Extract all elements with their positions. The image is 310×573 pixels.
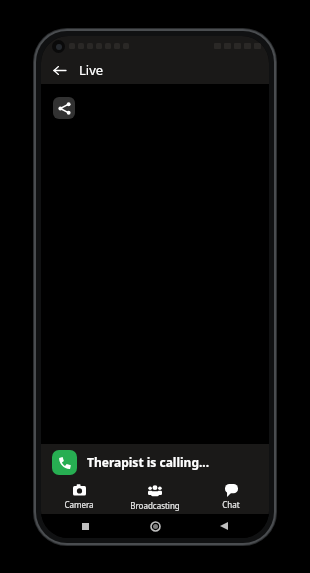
- staticText: Broadcasting: [130, 500, 180, 511]
- button[interactable]: Recents: [41, 514, 117, 538]
- button[interactable]: Chat: [193, 480, 269, 514]
- button[interactable]: Back: [47, 58, 71, 82]
- button[interactable]: Home: [117, 514, 193, 538]
- staticText: Chat: [222, 499, 240, 510]
- button[interactable]: Back: [193, 514, 269, 538]
- button[interactable]: Share: [53, 97, 75, 119]
- staticText: Therapist is calling...: [87, 454, 210, 470]
- button[interactable]: Camera: [41, 480, 117, 514]
- button[interactable]: Therapist is calling...: [41, 444, 269, 480]
- button[interactable]: Broadcasting: [117, 480, 193, 514]
- staticText: Camera: [64, 499, 94, 510]
- staticText: Live: [79, 61, 104, 79]
